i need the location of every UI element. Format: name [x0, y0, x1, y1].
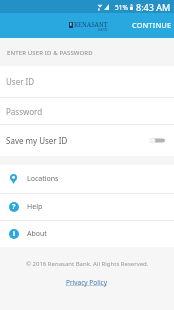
button[interactable]: i [0, 221, 174, 247]
staticText: User ID [6, 76, 35, 87]
staticText: RENASANT [74, 20, 108, 28]
button[interactable]: Privacy Policy [66, 278, 108, 287]
staticText: 51% [115, 3, 128, 12]
staticText: Help [27, 202, 43, 212]
staticText: Save my User ID [6, 135, 68, 146]
button[interactable]: CONTINUE [127, 15, 174, 37]
staticText: BANK [98, 28, 108, 32]
staticText: 8:43 AM [136, 1, 171, 13]
staticText: ? [12, 202, 16, 212]
staticText: Locations [27, 174, 59, 184]
staticText: Privacy Policy [66, 278, 108, 287]
other: Locations [10, 174, 17, 184]
button[interactable]: ? [0, 194, 174, 220]
staticText: About [27, 229, 47, 239]
staticText: ENTER USER ID & PASSWORD [7, 49, 93, 57]
button[interactable]: Password [0, 98, 174, 124]
staticText: i [13, 229, 16, 239]
staticText: CONTINUE [132, 20, 172, 30]
staticText: Password [6, 106, 43, 117]
button[interactable]: User ID [0, 66, 174, 97]
button[interactable]: Save my User ID [0, 125, 174, 156]
button[interactable]: Locations [0, 165, 174, 193]
staticText: © 2016 Renasant Bank. All Rights Reserve… [26, 260, 149, 268]
